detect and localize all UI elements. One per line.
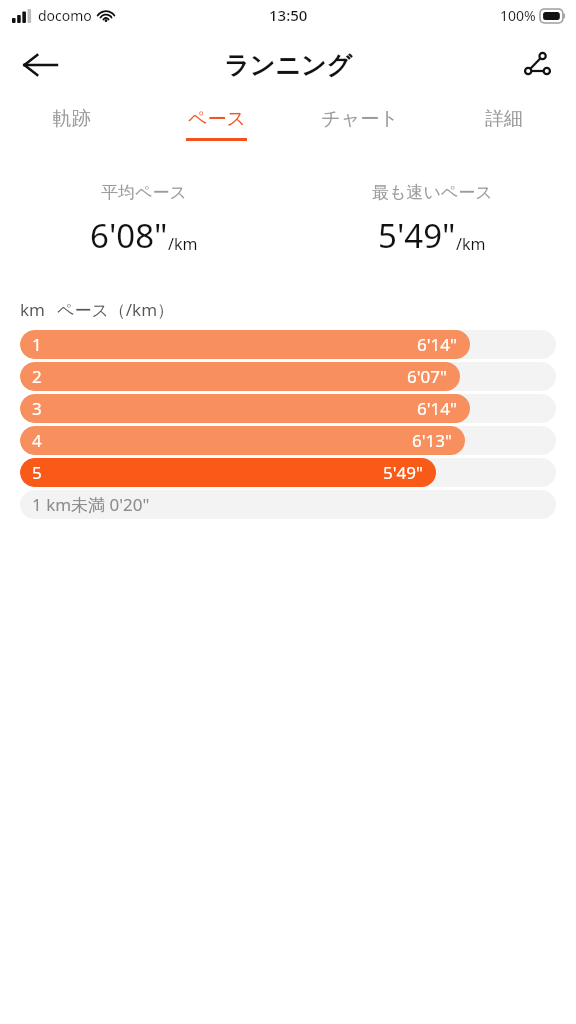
button[interactable]: 1 km未満 0'20" bbox=[20, 490, 556, 519]
staticText: km bbox=[20, 298, 45, 321]
staticText: ランニング bbox=[224, 50, 352, 81]
staticText: 6'07" bbox=[407, 365, 447, 388]
staticText: 5'49" bbox=[383, 461, 423, 484]
staticText: 13:50 bbox=[269, 5, 308, 25]
staticText: 6'14" bbox=[417, 397, 457, 420]
staticText: 1 bbox=[32, 333, 42, 356]
button[interactable]: チャート bbox=[288, 100, 432, 152]
staticText: 5'49" bbox=[378, 213, 456, 258]
staticText: 詳細 bbox=[485, 107, 523, 131]
staticText: /km bbox=[456, 233, 486, 255]
staticText: 軌跡 bbox=[53, 107, 91, 131]
staticText: 3 bbox=[32, 397, 42, 420]
button[interactable]: Back bbox=[14, 39, 66, 91]
staticText: チャート bbox=[321, 107, 399, 131]
staticText: 4 bbox=[32, 429, 42, 452]
button[interactable]: 軌跡 bbox=[0, 100, 144, 152]
staticText: 1 km未満 0'20" bbox=[32, 493, 150, 516]
button[interactable]: Share bbox=[510, 39, 562, 91]
staticText: docomo bbox=[38, 6, 92, 25]
button[interactable]: 4 bbox=[20, 426, 556, 455]
staticText: 6'08" bbox=[90, 213, 168, 258]
staticText: 100% bbox=[500, 6, 536, 25]
staticText: 5 bbox=[32, 461, 42, 484]
staticText: 2 bbox=[32, 365, 42, 388]
button[interactable]: 5 bbox=[20, 458, 556, 487]
button[interactable]: 2 bbox=[20, 362, 556, 391]
button[interactable]: ペース bbox=[144, 100, 288, 152]
button[interactable]: 1 bbox=[20, 330, 556, 359]
button[interactable]: 3 bbox=[20, 394, 556, 423]
staticText: 6'14" bbox=[417, 333, 457, 356]
staticText: ペース bbox=[188, 107, 246, 131]
staticText: 最も速いペース bbox=[372, 182, 493, 203]
staticText: /km bbox=[168, 233, 198, 255]
staticText: ペース（/km） bbox=[57, 298, 175, 321]
staticText: 平均ペース bbox=[101, 182, 187, 203]
button[interactable]: 詳細 bbox=[432, 100, 576, 152]
staticText: 6'13" bbox=[412, 429, 452, 452]
